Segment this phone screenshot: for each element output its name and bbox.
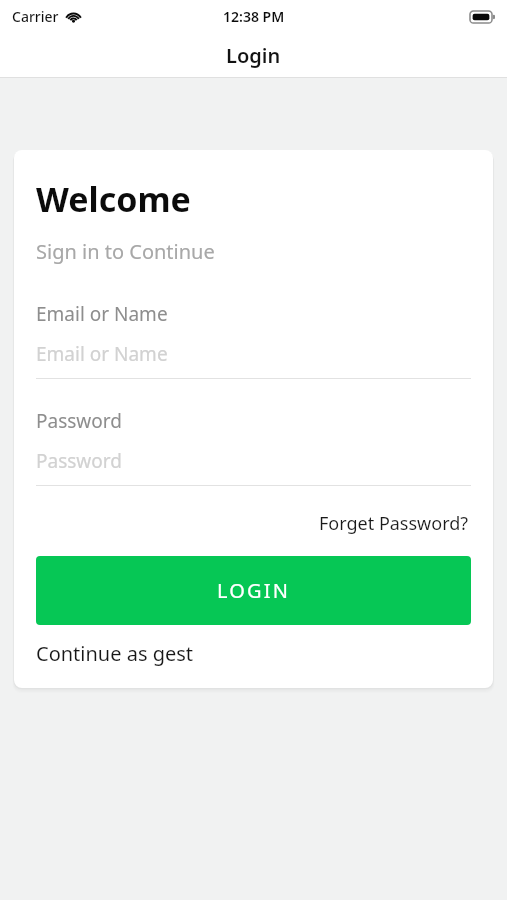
staticText: Continue as gest (36, 640, 194, 667)
button[interactable]: LOGIN (36, 556, 471, 625)
button[interactable]: Continue as gest (36, 637, 194, 670)
staticText: Forget Password? (319, 511, 469, 536)
staticText: Email or Name (36, 341, 168, 367)
button[interactable]: Password (36, 408, 471, 486)
staticText: Welcome (36, 176, 191, 222)
staticText: Password (36, 448, 122, 474)
staticText: Password (36, 408, 122, 434)
staticText: LOGIN (217, 577, 291, 604)
staticText: Email or Name (36, 301, 168, 327)
staticText: Sign in to Continue (36, 238, 215, 265)
staticText: 12:38 PM (223, 7, 285, 26)
staticText: Carrier (12, 7, 59, 26)
button[interactable]: Forget Password? (317, 508, 471, 539)
button[interactable]: Email or Name (36, 301, 471, 379)
staticText: Login (226, 42, 281, 69)
